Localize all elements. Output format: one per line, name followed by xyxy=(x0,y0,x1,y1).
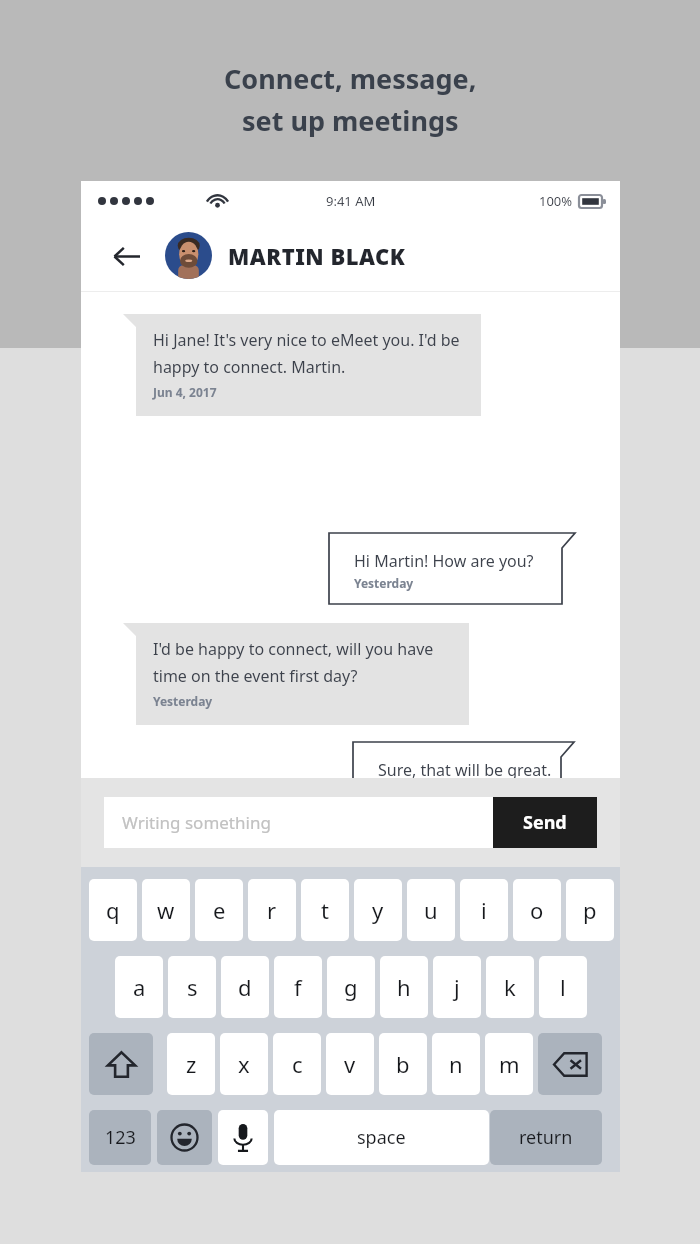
staticText: w xyxy=(157,895,175,925)
staticText: time on the event first day? xyxy=(153,665,358,687)
staticText: y xyxy=(372,895,384,925)
button[interactable]: Writing something xyxy=(104,797,493,848)
staticText: l xyxy=(560,972,566,1002)
staticText: k xyxy=(504,972,516,1002)
button[interactable]: o xyxy=(513,879,561,941)
button[interactable]: j xyxy=(433,956,481,1018)
button[interactable]: e xyxy=(195,879,243,941)
button[interactable]: Backspace xyxy=(538,1033,602,1095)
button[interactable]: b xyxy=(379,1033,427,1095)
button[interactable]: Back xyxy=(103,233,149,279)
button[interactable]: i xyxy=(460,879,508,941)
staticText: c xyxy=(292,1049,303,1079)
button[interactable]: d xyxy=(221,956,269,1018)
staticText: h xyxy=(397,972,411,1002)
button[interactable]: Send xyxy=(493,797,597,848)
staticText: return xyxy=(519,1125,573,1150)
staticText: t xyxy=(321,895,329,925)
staticText: Hi Jane! It's very nice to eMeet you. I'… xyxy=(153,329,460,351)
button[interactable]: x xyxy=(220,1033,268,1095)
staticText: a xyxy=(133,972,146,1002)
staticText: o xyxy=(530,895,544,925)
button[interactable]: Shift xyxy=(89,1033,153,1095)
button[interactable]: t xyxy=(301,879,349,941)
staticText: 11:55am xyxy=(378,784,428,800)
staticText: e xyxy=(213,895,226,925)
button[interactable]: g xyxy=(327,956,375,1018)
staticText: happy to connect. Martin. xyxy=(153,356,346,378)
button[interactable]: return xyxy=(490,1110,602,1165)
button[interactable]: u xyxy=(407,879,455,941)
button[interactable]: space xyxy=(274,1110,489,1165)
button[interactable]: z xyxy=(167,1033,215,1095)
button[interactable]: c xyxy=(273,1033,321,1095)
button[interactable]: a xyxy=(115,956,163,1018)
staticText: m xyxy=(499,1049,520,1079)
staticText: d xyxy=(238,972,252,1002)
button[interactable]: r xyxy=(248,879,296,941)
staticText: Send xyxy=(523,810,567,835)
button[interactable]: n xyxy=(432,1033,480,1095)
staticText: Yesterday xyxy=(354,575,414,591)
staticText: j xyxy=(454,972,460,1002)
button[interactable]: m xyxy=(485,1033,533,1095)
staticText: Yesterday xyxy=(153,693,213,709)
staticText: p xyxy=(583,895,597,925)
staticText: Sure, that will be great. xyxy=(378,759,552,781)
staticText: b xyxy=(396,1049,410,1079)
button[interactable]: k xyxy=(486,956,534,1018)
button[interactable]: I'd be happy to connect, will you have xyxy=(123,623,469,725)
staticText: x xyxy=(238,1049,250,1079)
button[interactable]: l xyxy=(539,956,587,1018)
staticText: r xyxy=(267,895,277,925)
staticText: z xyxy=(186,1049,197,1079)
staticText: Hi Martin! How are you? xyxy=(354,550,534,572)
staticText: MARTIN BLACK xyxy=(228,241,406,271)
button[interactable]: w xyxy=(142,879,190,941)
staticText: space xyxy=(357,1125,406,1150)
staticText: Connect, message, xyxy=(224,60,477,97)
staticText: s xyxy=(187,972,198,1002)
staticText: 100% xyxy=(539,192,573,210)
staticText: set up meetings xyxy=(242,102,459,139)
staticText: 9:41 AM xyxy=(326,192,376,210)
button[interactable]: Hi Martin! How are you? xyxy=(328,532,576,605)
staticText: Writing something xyxy=(122,811,271,834)
staticText: u xyxy=(424,895,438,925)
staticText: I'd be happy to connect, will you have xyxy=(153,638,434,660)
button[interactable]: y xyxy=(354,879,402,941)
staticText: q xyxy=(106,895,120,925)
staticText: f xyxy=(294,972,302,1002)
staticText: Jun 4, 2017 xyxy=(153,384,217,400)
button[interactable]: v xyxy=(326,1033,374,1095)
button[interactable]: s xyxy=(168,956,216,1018)
button[interactable]: Emoji xyxy=(157,1110,212,1165)
button[interactable]: f xyxy=(274,956,322,1018)
button[interactable]: q xyxy=(89,879,137,941)
staticText: n xyxy=(449,1049,463,1079)
button[interactable]: Hi Jane! It's very nice to eMeet you. I'… xyxy=(123,314,481,416)
button[interactable]: Sure, that will be great. xyxy=(352,741,575,814)
staticText: i xyxy=(481,895,487,925)
button[interactable]: h xyxy=(380,956,428,1018)
button[interactable]: 123 xyxy=(89,1110,151,1165)
staticText: g xyxy=(344,972,358,1002)
button[interactable]: Voice input xyxy=(218,1110,268,1165)
staticText: 123 xyxy=(105,1125,136,1150)
staticText: v xyxy=(344,1049,356,1079)
button[interactable]: p xyxy=(566,879,614,941)
